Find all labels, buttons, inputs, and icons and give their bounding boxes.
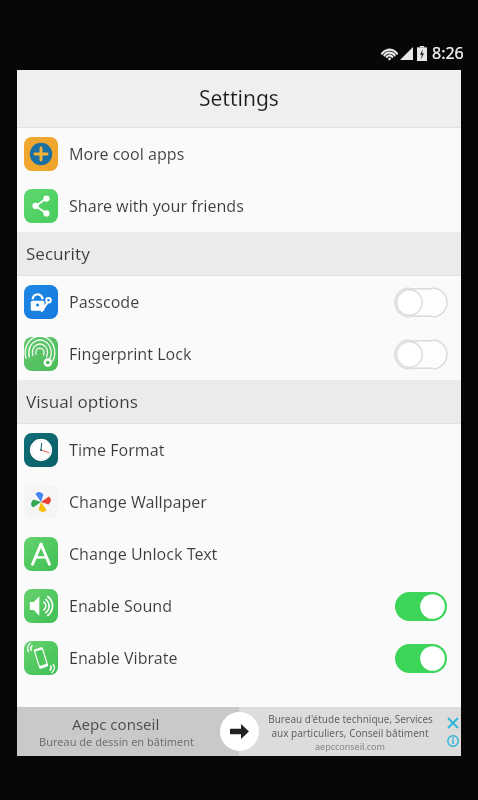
staticText: Bureau d'étude technique, Services (268, 712, 433, 726)
button[interactable]: Toggle off (395, 288, 447, 317)
staticText: Share with your friends (69, 195, 244, 217)
button[interactable]: Time Format (17, 424, 461, 476)
staticText: Passcode (69, 291, 140, 313)
staticText: More cool apps (69, 143, 185, 165)
button[interactable]: Enable Vibrate (17, 632, 461, 684)
button[interactable]: Enable Sound (17, 580, 461, 632)
staticText: Bureau de dessin en bâtiment (39, 734, 194, 749)
staticText: Time Format (69, 439, 165, 461)
staticText: Aepc conseil (72, 714, 160, 734)
button[interactable]: Share with your friends (17, 180, 461, 232)
staticText: Change Wallpaper (69, 491, 207, 513)
button[interactable]: Open ad (220, 712, 259, 751)
button[interactable]: Change Unlock Text (17, 528, 461, 580)
button[interactable]: Aepc conseil (17, 707, 461, 756)
staticText: Fingerprint Lock (69, 343, 192, 365)
staticText: Enable Vibrate (69, 647, 178, 669)
button[interactable]: Fingerprint Lock (17, 328, 461, 380)
button[interactable]: Toggle on (395, 644, 447, 673)
button[interactable]: Passcode (17, 276, 461, 328)
staticText: aux particuliers, Conseil bâtiment (271, 726, 429, 740)
staticText: aepcconseil.com (315, 740, 385, 752)
button[interactable]: Toggle off (395, 340, 447, 369)
staticText: Enable Sound (69, 595, 172, 617)
staticText: Change Unlock Text (69, 543, 218, 565)
button[interactable]: Change Wallpaper (17, 476, 461, 528)
staticText: Settings (199, 84, 279, 113)
button[interactable]: More cool apps (17, 128, 461, 180)
button[interactable]: Toggle on (395, 592, 447, 621)
staticText: Security (26, 242, 90, 265)
staticText: 8:26 (432, 42, 464, 64)
staticText: Visual options (26, 390, 138, 413)
button[interactable]: Ad info (447, 735, 459, 747)
button[interactable]: Close ad (447, 717, 459, 729)
